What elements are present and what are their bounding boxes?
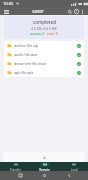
button[interactable]: audio file.wav	[4, 50, 84, 59]
button[interactable]: archive file.zip	[4, 41, 84, 50]
staticText: completed	[33, 19, 56, 25]
staticText: audio file.wav	[14, 52, 77, 57]
button[interactable]: Home	[39, 171, 49, 180]
staticText: error: 0	[47, 32, 58, 36]
button[interactable]: Transfer	[0, 162, 30, 171]
button[interactable]: Back	[64, 171, 74, 180]
button[interactable]: Expand panel	[3, 152, 85, 162]
button[interactable]: Search	[66, 8, 73, 15]
staticText: success: 4	[30, 32, 45, 36]
staticText: 10:05	[3, 1, 14, 6]
staticText: Remote	[39, 168, 50, 171]
staticText: archive file.zip	[14, 43, 77, 48]
button[interactable]: Open navigation menu	[3, 8, 10, 15]
button[interactable]: Remote	[30, 162, 59, 171]
staticText: saver	[32, 8, 44, 14]
staticText: apk file.apk	[14, 70, 77, 75]
button[interactable]: Local	[59, 162, 88, 171]
button[interactable]: completed	[4, 16, 84, 39]
button[interactable]: More options	[80, 9, 85, 14]
staticText: Transfer	[10, 168, 21, 171]
staticText: document file.docx	[14, 61, 77, 66]
button[interactable]: apk file.apk	[4, 68, 84, 77]
staticText: Local	[71, 168, 78, 171]
button[interactable]: Account	[73, 8, 80, 15]
staticText: 4.6 MB of 4.6 MB	[31, 27, 57, 31]
button[interactable]: Recent apps	[15, 171, 25, 180]
button[interactable]: document file.docx	[4, 59, 84, 68]
